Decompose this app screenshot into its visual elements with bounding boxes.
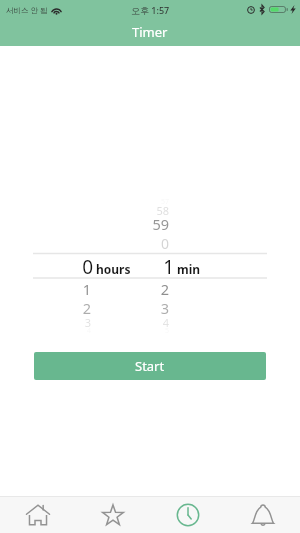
staticText: 58 xyxy=(129,203,169,218)
staticText: min xyxy=(177,261,201,277)
staticText: Timer xyxy=(132,23,168,41)
button[interactable]: Favorites xyxy=(75,497,150,533)
staticText: 1 xyxy=(134,254,174,280)
staticText: 3 xyxy=(51,315,91,330)
staticText: 1 xyxy=(51,279,91,299)
staticText: 3 xyxy=(129,298,169,318)
staticText: hours xyxy=(96,261,131,277)
button[interactable]: Start xyxy=(34,352,266,380)
staticText: 서비스 안 됨 xyxy=(6,5,48,15)
staticText: 2 xyxy=(51,298,91,318)
staticText: Start xyxy=(135,357,165,375)
button[interactable]: Timer xyxy=(150,497,225,533)
button[interactable]: Alarms xyxy=(225,497,300,533)
staticText: 4 xyxy=(129,315,169,330)
button[interactable]: Home xyxy=(0,497,75,533)
staticText: 2 xyxy=(129,279,169,299)
staticText: 0 xyxy=(129,234,169,253)
staticText: 오후 1:57 xyxy=(131,4,170,16)
staticText: 0 xyxy=(53,254,93,280)
staticText: 59 xyxy=(129,214,169,234)
